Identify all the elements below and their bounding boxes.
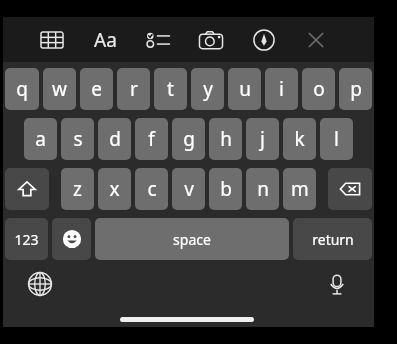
- button[interactable]: g: [172, 118, 205, 160]
- button[interactable]: y: [191, 68, 224, 110]
- button[interactable]: z: [61, 168, 94, 210]
- staticText: y: [203, 76, 213, 102]
- button[interactable]: w: [43, 68, 76, 110]
- staticText: c: [147, 176, 157, 202]
- button[interactable]: f: [135, 118, 168, 160]
- button[interactable]: v: [172, 168, 205, 210]
- staticText: a: [35, 126, 46, 152]
- staticText: 123: [14, 230, 39, 249]
- staticText: space: [173, 230, 211, 249]
- staticText: m: [291, 176, 309, 202]
- button[interactable]: Backspace: [328, 168, 372, 210]
- button[interactable]: x: [98, 168, 131, 210]
- staticText: Aa: [94, 27, 117, 53]
- button[interactable]: Shift: [5, 168, 49, 210]
- staticText: x: [109, 176, 120, 202]
- staticText: w: [52, 76, 67, 102]
- staticText: n: [257, 176, 269, 202]
- button[interactable]: Markup: [249, 25, 279, 55]
- staticText: l: [334, 126, 339, 152]
- button[interactable]: d: [98, 118, 131, 160]
- staticText: f: [148, 126, 155, 152]
- button[interactable]: u: [228, 68, 261, 110]
- staticText: j: [260, 126, 265, 152]
- staticText: d: [109, 126, 121, 152]
- button[interactable]: Checklist: [143, 25, 173, 55]
- button[interactable]: n: [246, 168, 279, 210]
- staticText: p: [350, 76, 362, 102]
- button[interactable]: j: [246, 118, 279, 160]
- button[interactable]: p: [339, 68, 372, 110]
- staticText: return: [312, 230, 354, 249]
- button[interactable]: Aa: [90, 25, 120, 55]
- staticText: b: [220, 176, 232, 202]
- button[interactable]: Emoji: [52, 218, 91, 260]
- staticText: i: [279, 76, 284, 102]
- staticText: h: [220, 126, 232, 152]
- button[interactable]: space: [95, 218, 289, 260]
- button[interactable]: k: [283, 118, 316, 160]
- button[interactable]: a: [24, 118, 57, 160]
- button[interactable]: return: [293, 218, 372, 260]
- staticText: v: [184, 176, 194, 202]
- button[interactable]: i: [265, 68, 298, 110]
- button[interactable]: t: [154, 68, 187, 110]
- button[interactable]: m: [283, 168, 316, 210]
- staticText: s: [73, 126, 83, 152]
- button[interactable]: l: [320, 118, 353, 160]
- button[interactable]: Camera: [196, 25, 226, 55]
- button[interactable]: Insert table: [37, 25, 67, 55]
- button[interactable]: 123: [5, 218, 48, 260]
- button[interactable]: b: [209, 168, 242, 210]
- staticText: q: [16, 76, 28, 102]
- button[interactable]: Close: [301, 25, 331, 55]
- staticText: e: [91, 76, 102, 102]
- staticText: k: [294, 126, 305, 152]
- button[interactable]: s: [61, 118, 94, 160]
- button[interactable]: Next keyboard: [27, 271, 53, 297]
- button[interactable]: Dictation: [324, 271, 350, 297]
- staticText: u: [239, 76, 251, 102]
- button[interactable]: e: [80, 68, 113, 110]
- staticText: r: [130, 76, 138, 102]
- button[interactable]: h: [209, 118, 242, 160]
- staticText: g: [183, 126, 195, 152]
- staticText: o: [313, 76, 325, 102]
- staticText: z: [73, 176, 82, 202]
- button[interactable]: r: [117, 68, 150, 110]
- button[interactable]: q: [5, 68, 39, 110]
- button[interactable]: c: [135, 168, 168, 210]
- button[interactable]: o: [302, 68, 335, 110]
- staticText: t: [167, 76, 174, 102]
